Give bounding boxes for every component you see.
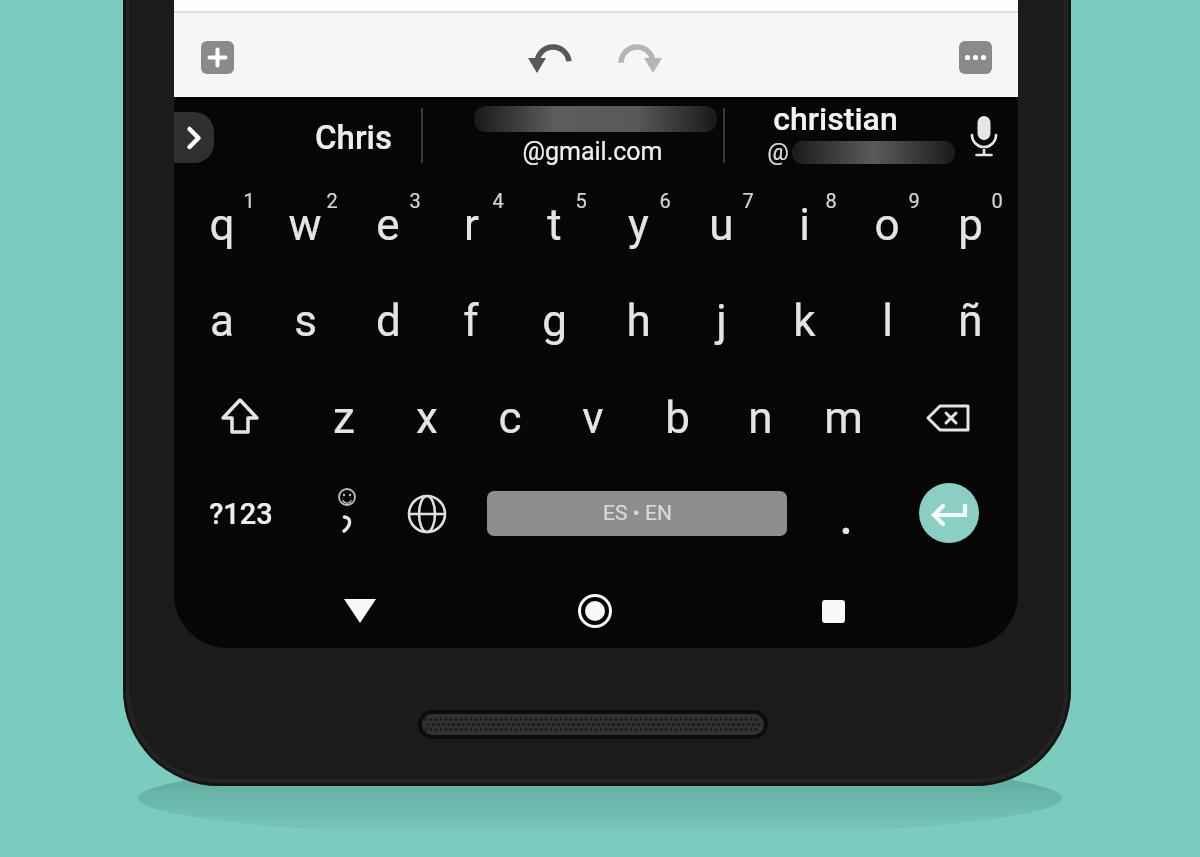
button[interactable] <box>560 576 630 646</box>
button[interactable]: k <box>764 275 844 367</box>
button[interactable]: z <box>304 372 384 464</box>
staticText: e <box>376 199 400 251</box>
staticText: 5 <box>575 189 587 212</box>
staticText: ñ <box>958 295 983 347</box>
staticText: p <box>958 199 983 251</box>
button[interactable] <box>613 33 661 81</box>
staticText: . <box>840 497 852 544</box>
button[interactable] <box>201 41 234 74</box>
staticText: m <box>824 392 863 444</box>
staticText: v <box>582 392 604 444</box>
button[interactable]: ñ <box>930 275 1010 367</box>
staticText: ES • EN <box>603 501 672 526</box>
staticText: k <box>793 295 816 347</box>
button[interactable]: q <box>182 179 262 271</box>
button[interactable]: Chris <box>262 100 445 175</box>
button[interactable]: n <box>720 372 800 464</box>
button[interactable]: s <box>265 275 345 367</box>
button[interactable]: y <box>598 179 678 271</box>
button[interactable]: l <box>847 275 927 367</box>
button[interactable] <box>903 373 993 463</box>
staticText: h <box>626 295 651 347</box>
button[interactable]: e <box>348 179 428 271</box>
staticText: g <box>542 295 567 347</box>
button[interactable]: b <box>637 372 717 464</box>
button[interactable] <box>959 41 992 74</box>
button[interactable]: u <box>681 179 761 271</box>
staticText: christian <box>773 100 898 138</box>
staticText: d <box>376 295 401 347</box>
button[interactable]: h <box>598 275 678 367</box>
button[interactable] <box>325 575 395 645</box>
button[interactable]: d <box>348 275 428 367</box>
button[interactable] <box>529 33 577 81</box>
staticText: f <box>463 295 479 347</box>
button[interactable]: c <box>470 372 550 464</box>
staticText: 1 <box>243 189 255 212</box>
staticText: @gmail.com <box>522 137 663 166</box>
staticText: 0 <box>991 189 1003 212</box>
staticText: o <box>874 199 900 251</box>
staticText: s <box>294 295 317 347</box>
staticText: l <box>882 295 893 347</box>
staticText: w <box>288 199 322 251</box>
staticText: 3 <box>409 189 421 212</box>
button[interactable] <box>307 469 387 559</box>
staticText: ?123 <box>209 497 273 531</box>
button[interactable] <box>174 112 214 163</box>
staticText: u <box>709 199 734 251</box>
staticText: 9 <box>908 189 920 212</box>
staticText: r <box>464 199 479 251</box>
button[interactable] <box>387 469 467 559</box>
button[interactable] <box>200 372 280 462</box>
button[interactable] <box>919 483 979 543</box>
staticText: c <box>498 392 522 444</box>
staticText: 6 <box>659 189 671 212</box>
button[interactable]: j <box>681 275 761 367</box>
button[interactable]: ES • EN <box>487 491 787 536</box>
button[interactable] <box>725 100 955 175</box>
staticText: b <box>665 392 690 444</box>
staticText: t <box>547 199 562 251</box>
button[interactable]: i <box>764 179 844 271</box>
button[interactable]: f <box>431 275 511 367</box>
button[interactable] <box>798 576 868 646</box>
button[interactable]: v <box>553 372 633 464</box>
button[interactable]: a <box>182 275 262 367</box>
staticText: y <box>628 199 649 251</box>
staticText: @ <box>767 138 789 166</box>
button[interactable] <box>423 100 723 175</box>
staticText: 2 <box>326 189 338 212</box>
staticText: x <box>416 392 438 444</box>
staticText: z <box>333 392 355 444</box>
button[interactable]: r <box>431 179 511 271</box>
button[interactable]: w <box>265 179 345 271</box>
staticText: Chris <box>315 118 392 157</box>
button[interactable]: x <box>387 372 467 464</box>
staticText: a <box>210 295 234 347</box>
button[interactable]: m <box>803 372 883 464</box>
button[interactable]: ?123 <box>186 469 296 559</box>
staticText: 7 <box>742 189 754 212</box>
staticText: q <box>209 199 235 251</box>
staticText: 4 <box>492 189 504 212</box>
staticText: i <box>799 199 810 251</box>
staticText: j <box>716 295 727 347</box>
staticText: n <box>748 392 773 444</box>
button[interactable]: g <box>514 275 594 367</box>
button[interactable]: t <box>514 179 594 271</box>
staticText: 8 <box>825 189 837 212</box>
button[interactable]: o <box>847 179 927 271</box>
button[interactable]: p <box>930 179 1010 271</box>
button[interactable]: . <box>811 475 881 565</box>
button[interactable] <box>954 107 1014 167</box>
